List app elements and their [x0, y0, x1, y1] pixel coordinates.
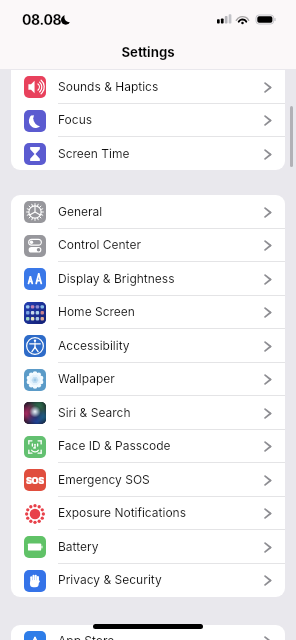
staticText: Wallpaper	[58, 371, 115, 386]
staticText: Emergency SOS	[58, 472, 150, 487]
button[interactable]: Exposure Notifications	[11, 497, 285, 530]
button[interactable]: Siri & Search	[11, 396, 285, 430]
button[interactable]: Home Screen	[11, 296, 285, 329]
staticText: SOS	[26, 475, 44, 486]
staticText: Face ID & Passcode	[58, 438, 171, 453]
staticText: App Store	[58, 633, 115, 640]
staticText: Screen Time	[58, 146, 130, 161]
staticText: General	[58, 204, 103, 219]
staticText: Home Screen	[58, 304, 135, 319]
staticText: Control Center	[58, 237, 141, 252]
staticText: 08.08	[22, 11, 62, 28]
staticText: Settings	[0, 44, 296, 60]
button[interactable]: Focus	[11, 104, 285, 137]
staticText: Exposure Notifications	[58, 505, 187, 520]
button[interactable]: SOS	[11, 463, 285, 497]
button[interactable]: Sounds & Haptics	[11, 70, 285, 104]
button[interactable]: Control Center	[11, 229, 285, 262]
staticText: Sounds & Haptics	[58, 79, 159, 94]
button[interactable]: Accessibility	[11, 329, 285, 363]
button[interactable]: General	[11, 195, 285, 229]
staticText: Privacy & Security	[58, 572, 162, 587]
staticText: Accessibility	[58, 338, 130, 353]
button[interactable]: Face ID & Passcode	[11, 430, 285, 463]
button[interactable]: Battery	[11, 530, 285, 564]
staticText: Battery	[58, 539, 99, 554]
button[interactable]: App Store	[11, 625, 285, 640]
button[interactable]: Privacy & Security	[11, 564, 285, 597]
button[interactable]: Wallpaper	[11, 363, 285, 396]
staticText: Focus	[58, 112, 93, 127]
staticText: Display & Brightness	[58, 271, 175, 286]
button[interactable]: Display & Brightness	[11, 262, 285, 296]
button[interactable]: Screen Time	[11, 137, 285, 170]
staticText: Siri & Search	[58, 405, 131, 420]
